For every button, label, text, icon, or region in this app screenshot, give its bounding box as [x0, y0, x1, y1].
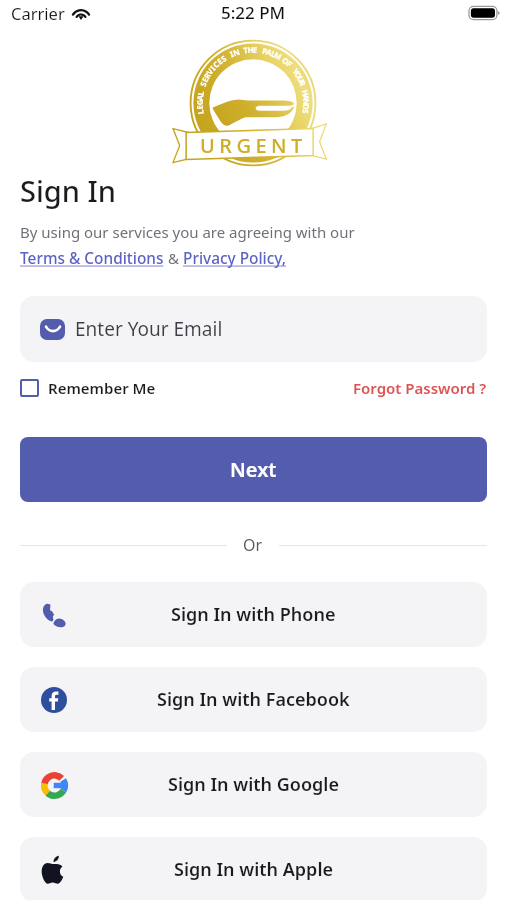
staticText: Sign In with Facebook — [157, 687, 350, 712]
staticText: Carrier — [11, 2, 65, 24]
button[interactable]: Sign In with Facebook — [20, 667, 487, 732]
staticText: Remember Me — [48, 378, 156, 398]
staticText: Enter Your Email — [75, 316, 223, 342]
staticText: Sign In with Apple — [174, 857, 334, 882]
staticText: By using our services you are agreeing w… — [20, 222, 355, 242]
staticText: Sign In — [20, 171, 116, 210]
button[interactable]: Sign In with Apple — [20, 837, 487, 900]
button[interactable]: Terms & Conditions — [20, 248, 164, 269]
staticText: URGENT — [200, 132, 307, 159]
staticText: Next — [230, 456, 277, 483]
staticText: Sign In with Phone — [171, 602, 336, 627]
button[interactable]: Privacy Policy, — [183, 248, 287, 269]
button[interactable]: Next — [20, 437, 487, 502]
button[interactable]: Sign In with Phone — [20, 582, 487, 647]
button[interactable]: Forgot Password ? — [353, 378, 487, 398]
staticText: & — [164, 248, 183, 268]
staticText: Sign In with Google — [168, 772, 339, 797]
button[interactable]: Enter Your Email — [20, 296, 487, 362]
button[interactable]: Sign In with Google — [20, 752, 487, 817]
button[interactable]: Remember Me — [20, 378, 156, 398]
staticText: 5:22 PM — [221, 1, 286, 24]
staticText: Or — [243, 534, 263, 556]
